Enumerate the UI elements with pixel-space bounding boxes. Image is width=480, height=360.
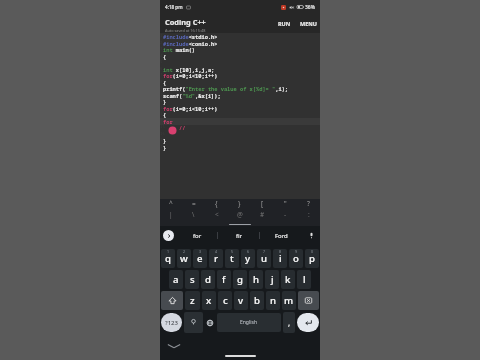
staticText: English: [240, 319, 258, 326]
button[interactable]: ?123: [161, 313, 182, 332]
staticText: l: [303, 273, 306, 286]
button[interactable]: w: [177, 249, 191, 268]
staticText: w: [180, 252, 188, 265]
button[interactable]: i: [273, 249, 287, 268]
staticText: \: [192, 210, 195, 219]
staticText: x: [206, 294, 212, 307]
button[interactable]: Voice input: [302, 226, 320, 245]
button[interactable]: m: [282, 291, 296, 310]
staticText: y: [245, 252, 251, 265]
staticText: d: [205, 273, 211, 286]
staticText: c: [223, 294, 228, 307]
staticText: [: [261, 199, 264, 208]
button[interactable]: f: [217, 270, 231, 289]
staticText: s: [190, 273, 195, 286]
button[interactable]: fir: [218, 226, 260, 245]
staticText: @: [237, 210, 243, 219]
button[interactable]: d: [201, 270, 215, 289]
staticText: i: [279, 252, 282, 265]
button[interactable]: y: [241, 249, 255, 268]
button[interactable]: e: [193, 249, 207, 268]
staticText: 4:18 pm: [165, 4, 183, 10]
staticText: Auto saved at 16:15:48: [165, 28, 206, 33]
button[interactable]: k: [281, 270, 295, 289]
button[interactable]: Shift: [161, 291, 183, 310]
button[interactable]: q: [161, 249, 175, 268]
button[interactable]: b: [250, 291, 264, 310]
staticText: r: [214, 252, 219, 265]
staticText: h: [253, 273, 260, 286]
button[interactable]: Expand toolbar: [163, 230, 174, 241]
staticText: m: [284, 294, 294, 307]
staticText: fir: [236, 232, 243, 240]
button[interactable]: r: [209, 249, 223, 268]
other: Shift: [168, 296, 177, 305]
button[interactable]: =: [182, 199, 205, 219]
staticText: 11: [160, 98, 165, 103]
button[interactable]: x: [202, 291, 216, 310]
button[interactable]: ?: [297, 199, 320, 219]
button[interactable]: v: [234, 291, 248, 310]
button[interactable]: o: [289, 249, 303, 268]
button[interactable]: [: [251, 199, 274, 219]
staticText: Coding C++: [165, 17, 206, 27]
button[interactable]: s: [185, 270, 199, 289]
staticText: 0: [311, 249, 314, 254]
button[interactable]: z: [185, 291, 200, 310]
button[interactable]: ^: [160, 199, 182, 219]
button[interactable]: Hide keyboard: [166, 341, 182, 351]
button[interactable]: for: [176, 226, 218, 245]
button[interactable]: ,: [283, 312, 295, 333]
staticText: ?123: [165, 319, 178, 327]
button[interactable]: j: [265, 270, 279, 289]
staticText: ^: [169, 199, 173, 208]
button[interactable]: MENU: [298, 17, 319, 30]
button[interactable]: {: [205, 199, 228, 219]
button[interactable]: a: [169, 270, 183, 289]
staticText: 4: [215, 249, 218, 254]
button[interactable]: Enter: [297, 313, 319, 332]
button[interactable]: h: [249, 270, 263, 289]
button[interactable]: g: [233, 270, 247, 289]
button[interactable]: }: [228, 199, 251, 219]
button[interactable]: English: [217, 313, 281, 332]
button[interactable]: Emoji: [184, 312, 203, 333]
button[interactable]: Backspace: [298, 291, 319, 310]
button[interactable]: n: [266, 291, 280, 310]
staticText: j: [271, 273, 274, 286]
staticText: for(i=0;i<10;i++): [163, 105, 218, 112]
staticText: #: [260, 210, 265, 219]
staticText: scanf("%d",&x[i]);: [163, 92, 221, 99]
staticText: {: [163, 111, 167, 118]
staticText: for: [193, 232, 202, 240]
staticText: ?: [307, 199, 310, 208]
staticText: f: [222, 273, 226, 286]
staticText: 3: [199, 249, 202, 254]
staticText: int x[10],i,j,a;: [163, 66, 215, 73]
button[interactable]: c: [218, 291, 232, 310]
button[interactable]: u: [257, 249, 271, 268]
staticText: {: [163, 53, 167, 60]
staticText: 8: [279, 249, 282, 254]
button[interactable]: Ford: [260, 226, 302, 245]
button[interactable]: l: [297, 270, 311, 289]
staticText: 10: [160, 92, 165, 97]
staticText: }: [163, 137, 167, 144]
staticText: int main(): [163, 46, 196, 53]
staticText: 5: [231, 249, 234, 254]
staticText: p: [309, 252, 315, 265]
button[interactable]: t: [225, 249, 239, 268]
staticText: ": [284, 199, 287, 208]
staticText: t: [230, 252, 234, 265]
staticText: u: [261, 252, 268, 265]
button[interactable]: ": [274, 199, 297, 219]
button[interactable]: RUN: [276, 17, 293, 30]
button[interactable]: Change language: [204, 312, 216, 333]
button[interactable]: p: [305, 249, 319, 268]
